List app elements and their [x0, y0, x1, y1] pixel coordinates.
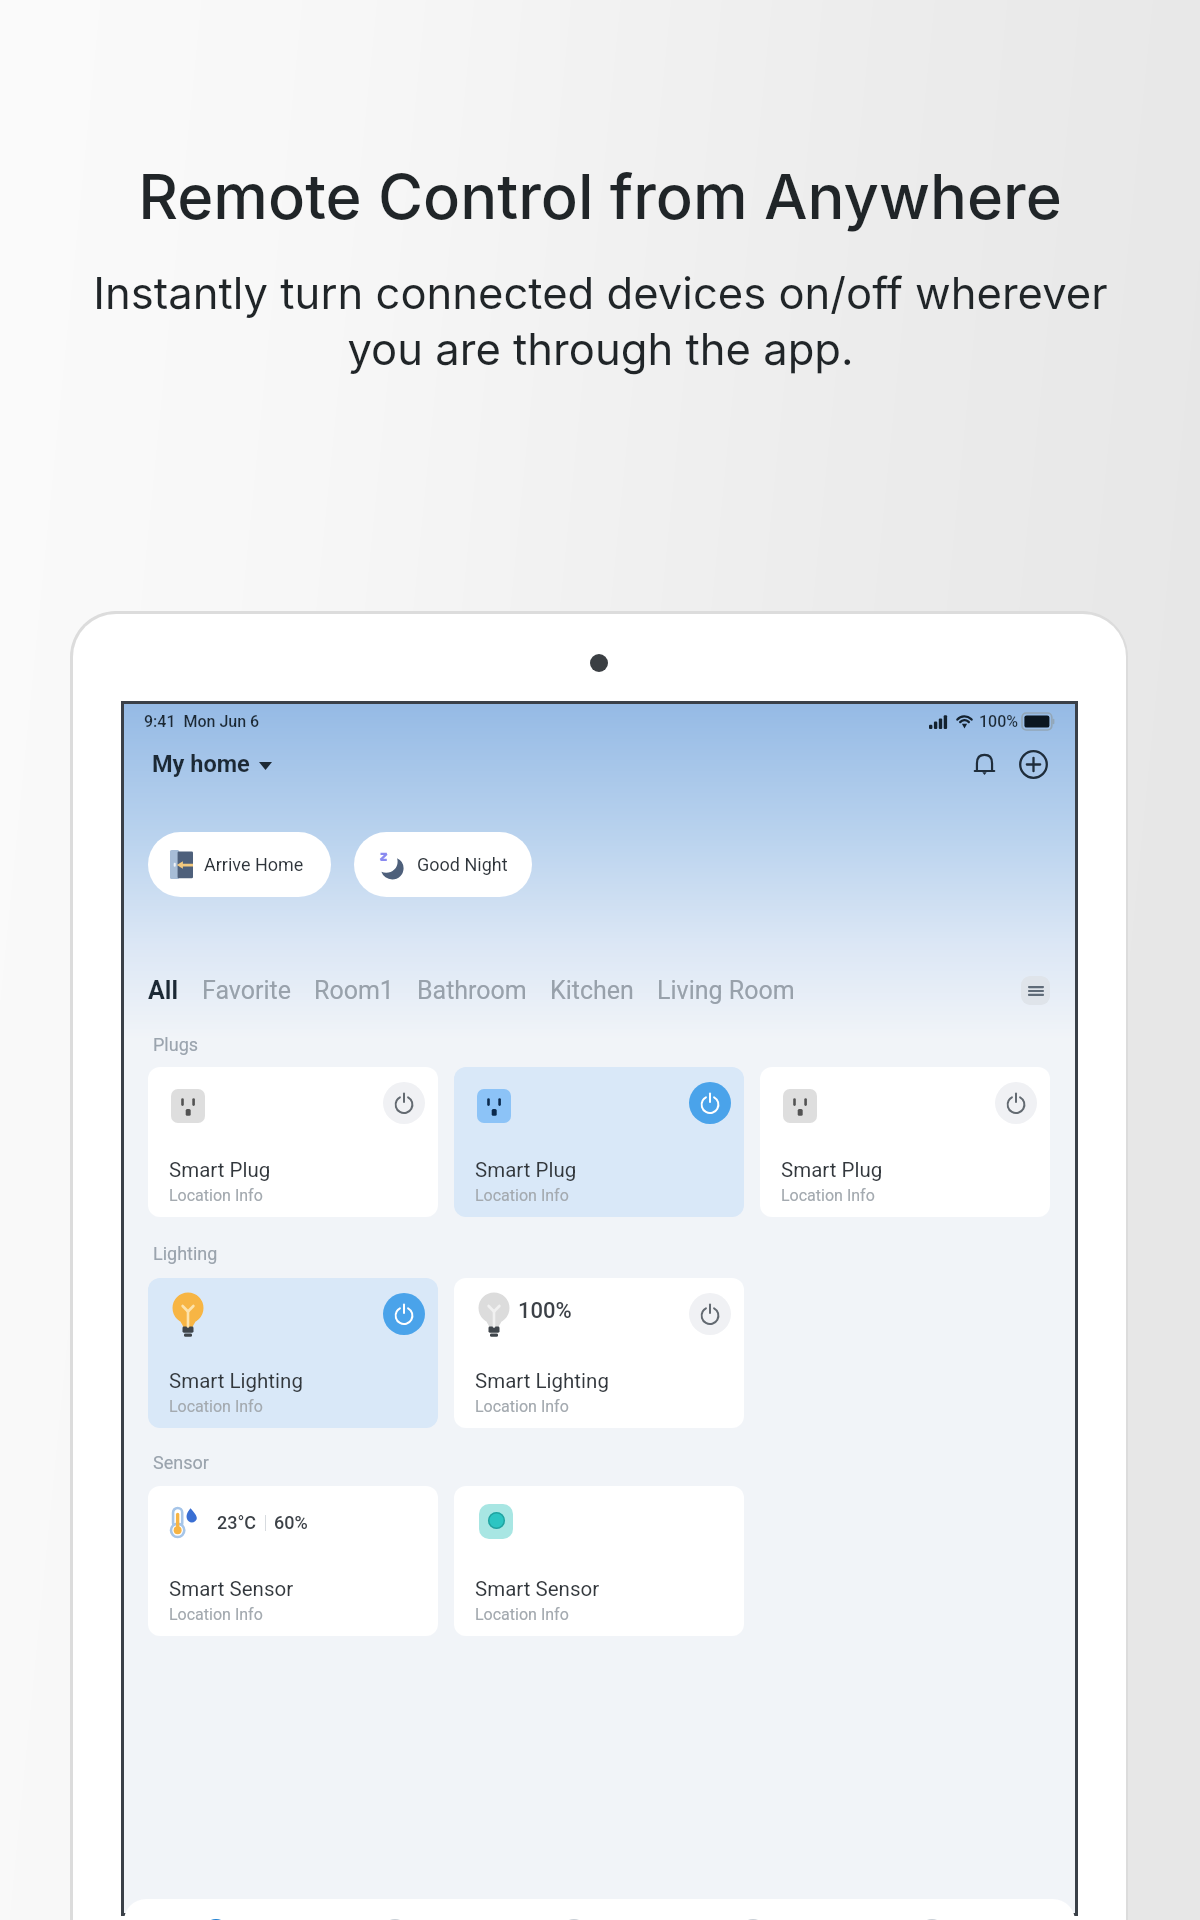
button[interactable]: All	[148, 976, 179, 1005]
staticText: Plugs	[153, 1034, 199, 1055]
staticText: 9:41 Mon Jun 6	[144, 712, 260, 731]
button[interactable]: 23°C	[148, 1486, 438, 1636]
staticText: Kitchen	[550, 976, 634, 1005]
staticText: Location Info	[169, 1397, 263, 1416]
staticText: Smart Plug	[781, 1158, 883, 1182]
button[interactable]: Power toggle	[383, 1082, 425, 1124]
button[interactable]: List options	[1021, 976, 1050, 1005]
button[interactable]: Power toggle	[689, 1082, 731, 1124]
staticText: My home	[152, 750, 250, 778]
staticText: Good Night	[417, 854, 508, 875]
button[interactable]: Navigation tab	[713, 1905, 793, 1920]
staticText: Sensor	[153, 1452, 209, 1473]
staticText: 100%	[979, 712, 1019, 731]
staticText: Location Info	[475, 1397, 569, 1416]
staticText: Living Room	[657, 976, 795, 1005]
button[interactable]: Notifications	[964, 744, 1004, 784]
staticText: Smart Plug	[169, 1158, 271, 1182]
staticText: Lighting	[153, 1243, 218, 1264]
staticText: Remote Control from Anywhere	[138, 159, 1062, 233]
staticText: Arrive Home	[204, 854, 304, 875]
staticText: Instantly turn connected devices on/off …	[93, 267, 1108, 375]
button[interactable]: Add device	[1013, 744, 1053, 784]
button[interactable]: Power toggle	[148, 1278, 438, 1428]
button[interactable]: Navigation tab	[534, 1905, 614, 1920]
button[interactable]: Room1	[314, 976, 394, 1005]
button[interactable]: Power toggle	[148, 1067, 438, 1217]
button[interactable]: Bathroom	[417, 976, 527, 1005]
button[interactable]: Navigation tab	[892, 1905, 972, 1920]
staticText: Smart Sensor	[169, 1577, 294, 1601]
button[interactable]: Living Room	[657, 976, 795, 1005]
staticText: Favorite	[202, 976, 291, 1005]
staticText: Location Info	[169, 1605, 263, 1624]
staticText: Location Info	[781, 1186, 875, 1205]
staticText: 23°C	[217, 1512, 257, 1533]
staticText: Location Info	[169, 1186, 263, 1205]
staticText: Smart Plug	[475, 1158, 577, 1182]
staticText: Room1	[314, 976, 394, 1005]
button[interactable]: Power toggle	[383, 1293, 425, 1335]
button[interactable]: Smart Sensor	[454, 1486, 744, 1636]
staticText: All	[148, 976, 179, 1005]
staticText: Location Info	[475, 1605, 569, 1624]
staticText: Smart Lighting	[169, 1369, 303, 1393]
button[interactable]: Power toggle	[995, 1082, 1037, 1124]
button[interactable]: Arrive Home	[148, 832, 331, 897]
staticText: 100%	[518, 1298, 572, 1324]
button[interactable]: Navigation tab	[355, 1905, 435, 1920]
staticText: Location Info	[475, 1186, 569, 1205]
staticText: 60%	[274, 1512, 308, 1533]
button[interactable]: Power toggle	[760, 1067, 1050, 1217]
button[interactable]: Good Night	[354, 832, 532, 897]
staticText: Bathroom	[417, 976, 527, 1005]
button[interactable]: 100%	[454, 1278, 744, 1428]
button[interactable]: Favorite	[202, 976, 291, 1005]
button[interactable]: Power toggle	[689, 1293, 731, 1335]
staticText: Smart Lighting	[475, 1369, 609, 1393]
button[interactable]: Kitchen	[550, 976, 634, 1005]
button[interactable]: Navigation tab	[176, 1905, 256, 1920]
staticText: Smart Sensor	[475, 1577, 600, 1601]
button[interactable]: Power toggle	[454, 1067, 744, 1217]
button[interactable]: My home	[152, 750, 272, 778]
